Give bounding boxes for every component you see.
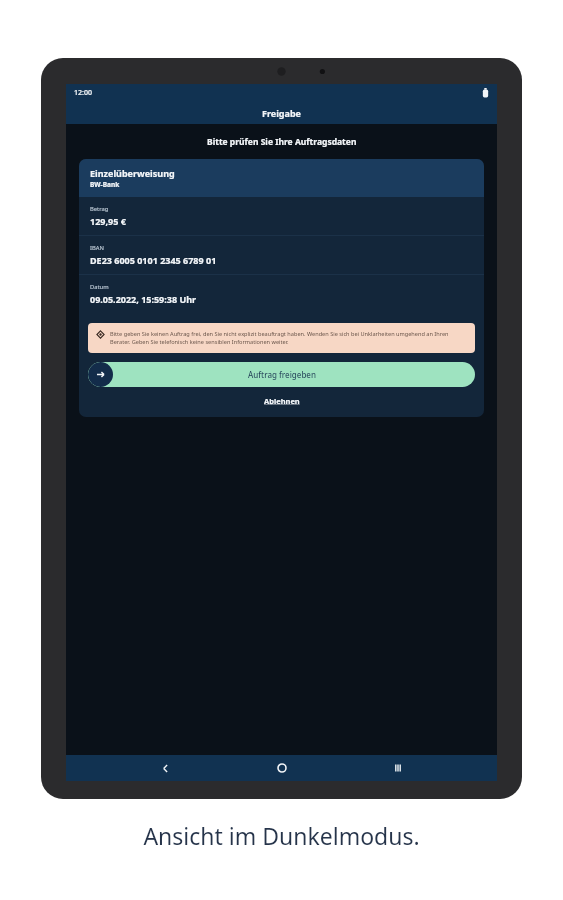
staticText: Bitte prüfen Sie Ihre Auftragsdaten	[207, 136, 357, 148]
staticText: Bitte geben Sie keinen Auftrag frei, den…	[110, 330, 467, 346]
button[interactable]: Back	[148, 755, 182, 781]
staticText: IBAN	[90, 244, 104, 252]
button[interactable]: Auftrag freigeben	[88, 362, 475, 387]
staticText: Datum	[90, 283, 109, 291]
staticText: 129,95 €	[90, 215, 126, 227]
staticText: Ansicht im Dunkelmodus.	[143, 820, 420, 851]
staticText: Ablehnen	[264, 396, 300, 406]
staticText: 12:00	[74, 88, 92, 98]
button[interactable]: Ablehnen	[79, 396, 484, 406]
staticText: Freigabe	[262, 107, 301, 119]
button[interactable]: Recent apps	[381, 755, 415, 781]
staticText: DE23 6005 0101 2345 6789 01	[90, 254, 217, 266]
staticText: 09.05.2022, 15:59:38 Uhr	[90, 293, 197, 305]
button[interactable]: Home	[265, 755, 299, 781]
staticText: Auftrag freigeben	[248, 369, 316, 380]
staticText: Einzelüberweisung	[90, 167, 175, 179]
staticText: BW-Bank	[90, 180, 120, 189]
staticText: Betrag	[90, 205, 109, 213]
